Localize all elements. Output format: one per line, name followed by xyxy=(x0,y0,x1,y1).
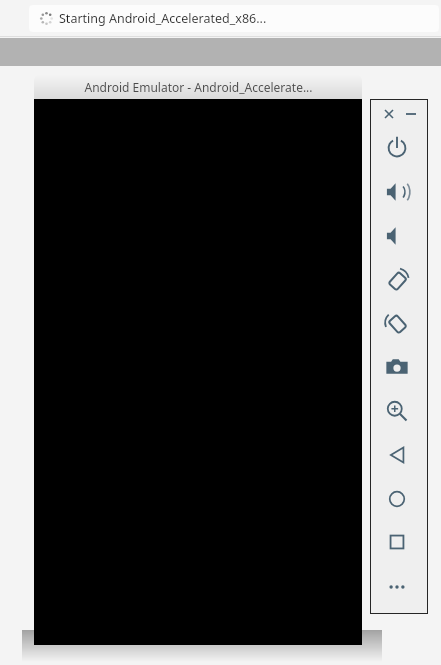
button[interactable]: Rotate left xyxy=(383,266,411,294)
button[interactable]: Volume up xyxy=(383,178,411,206)
staticText: Starting Android_Accelerated_x86... xyxy=(59,10,267,27)
staticText: Android Emulator - Android_Accelerate... xyxy=(84,79,313,95)
button[interactable]: Android Emulator - Android_Accelerate... xyxy=(34,75,362,99)
button[interactable]: Close xyxy=(381,106,397,122)
button[interactable]: Volume down xyxy=(383,222,411,250)
button[interactable]: Back xyxy=(383,441,411,469)
button[interactable]: Take screenshot xyxy=(383,353,411,381)
button[interactable]: Power xyxy=(383,134,411,162)
button[interactable]: Overview xyxy=(383,528,411,556)
button[interactable]: More options xyxy=(383,573,411,601)
button[interactable]: Minimize xyxy=(403,106,419,122)
button[interactable]: Zoom in xyxy=(383,397,411,425)
button[interactable]: Home xyxy=(383,485,411,513)
button[interactable]: Starting Android_Accelerated_x86... xyxy=(29,5,439,32)
button[interactable]: Rotate right xyxy=(383,309,411,337)
